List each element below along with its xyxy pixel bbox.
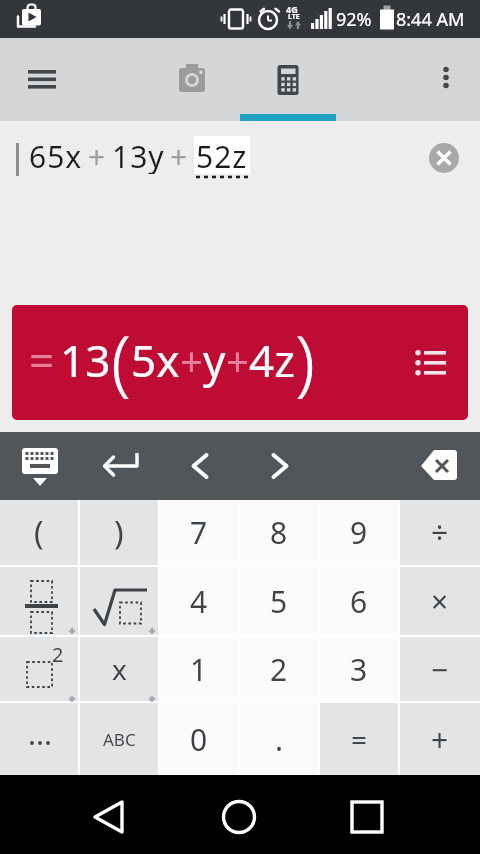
button[interactable]: 7 [160,500,238,565]
staticText: 3 [350,649,368,690]
button[interactable]: × [400,567,480,635]
staticText: 9 [350,512,368,553]
staticText: + [431,719,449,760]
button[interactable]: 2 [0,637,78,701]
button[interactable]: x [80,637,158,701]
button[interactable]: 0 [160,703,238,775]
button[interactable]: 2 [240,637,318,701]
staticText: 8 [270,512,288,553]
staticText: 6 [350,581,368,622]
staticText: 13 [60,330,111,390]
button[interactable]: + [400,703,480,775]
staticText: = [351,720,368,758]
staticText: 65x [29,136,83,174]
button[interactable] [209,787,269,847]
staticText: 2 [52,641,64,668]
staticText: ) [114,511,124,555]
staticText: 1 [190,649,208,690]
staticText: + [180,333,203,387]
button[interactable] [90,436,150,496]
button[interactable] [144,38,240,121]
button[interactable] [10,436,70,496]
staticText: LTE [288,12,300,22]
button[interactable]: = [320,703,398,775]
staticText: ÷ [431,512,449,553]
button[interactable] [250,436,310,496]
button[interactable]: ABC [80,703,158,775]
staticText: 0 [190,719,208,760]
button[interactable]: 1 [160,637,238,701]
button[interactable]: 8 [240,500,318,565]
staticText: 52z [196,136,248,174]
staticText: 4G [286,3,298,15]
staticText: ) [295,311,315,409]
button[interactable]: = [12,305,468,420]
button[interactable] [12,62,68,110]
button[interactable]: ÷ [400,500,480,565]
staticText: . [275,719,284,760]
button[interactable]: 9 [320,500,398,565]
button[interactable] [170,436,230,496]
button[interactable] [0,567,78,635]
button[interactable]: 5 [240,567,318,635]
button[interactable]: 4 [160,567,238,635]
button[interactable]: . [240,703,318,775]
button[interactable]: − [400,637,480,701]
staticText: 7 [190,512,208,553]
staticText: x [112,650,127,688]
button[interactable] [80,567,158,635]
button[interactable] [429,143,459,173]
staticText: 13y [112,136,165,174]
staticText: 5x [131,330,180,390]
staticText: ( [34,511,44,555]
button[interactable] [339,787,399,847]
staticText: 4 [190,581,208,622]
button[interactable] [410,436,470,496]
staticText: × [431,581,449,622]
button[interactable] [0,703,78,775]
button[interactable]: 3 [320,637,398,701]
staticText: 8:44 AM [396,7,465,32]
staticText: 92% [336,7,372,32]
staticText: − [431,649,449,690]
staticText: ( [111,311,131,409]
button[interactable]: 65x [29,136,250,174]
staticText: ABC [103,728,136,751]
staticText: + [88,136,107,174]
staticText: + [170,136,189,174]
staticText: y [203,330,226,390]
button[interactable] [79,787,139,847]
button[interactable]: 6 [320,567,398,635]
staticText: 4z [249,330,295,390]
staticText: 2 [270,649,288,690]
button[interactable] [422,62,470,110]
button[interactable]: ) [80,500,158,565]
staticText: 5 [270,581,288,622]
button[interactable]: ( [0,500,78,565]
button[interactable] [240,38,336,121]
staticText: = [29,330,55,390]
staticText: + [226,333,249,387]
